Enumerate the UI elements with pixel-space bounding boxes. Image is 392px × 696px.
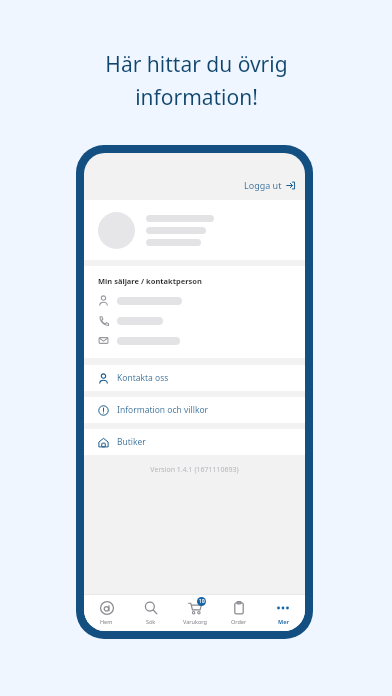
staticText: Information och villkor	[117, 404, 209, 416]
staticText: Hem	[100, 618, 113, 625]
staticText: Kontakta oss	[117, 372, 169, 384]
staticText: Här hittar du övrig	[105, 50, 288, 79]
staticText: Mer	[278, 618, 289, 625]
button[interactable]	[84, 200, 305, 260]
staticText: 10	[199, 598, 205, 605]
staticText: Logga ut	[244, 179, 282, 191]
button[interactable]: Logga ut	[234, 175, 305, 195]
button[interactable]: Information och villkor	[84, 397, 305, 423]
button[interactable]: Kontakta oss	[84, 365, 305, 391]
button[interactable]: Order	[217, 595, 261, 631]
staticText: Min säljare / kontaktperson	[98, 276, 202, 286]
button[interactable]: Hem	[84, 595, 129, 631]
staticText: Sök	[146, 618, 156, 625]
other: Varukorg	[188, 601, 202, 615]
other: Order	[232, 601, 246, 615]
other: Sök	[144, 601, 158, 615]
staticText: Order	[231, 618, 247, 625]
button[interactable]: Sök	[129, 595, 173, 631]
staticText: Version 1.4.1 (1671110693)	[84, 465, 305, 475]
staticText: Varukorg	[183, 618, 207, 625]
button[interactable]: Butiker	[84, 429, 305, 455]
staticText: Butiker	[117, 436, 146, 448]
staticText: information!	[135, 83, 258, 112]
other: Hem	[100, 601, 114, 615]
other: Mer	[276, 601, 290, 615]
button[interactable]: Mer	[261, 595, 305, 631]
button[interactable]: Varukorg	[173, 595, 217, 631]
